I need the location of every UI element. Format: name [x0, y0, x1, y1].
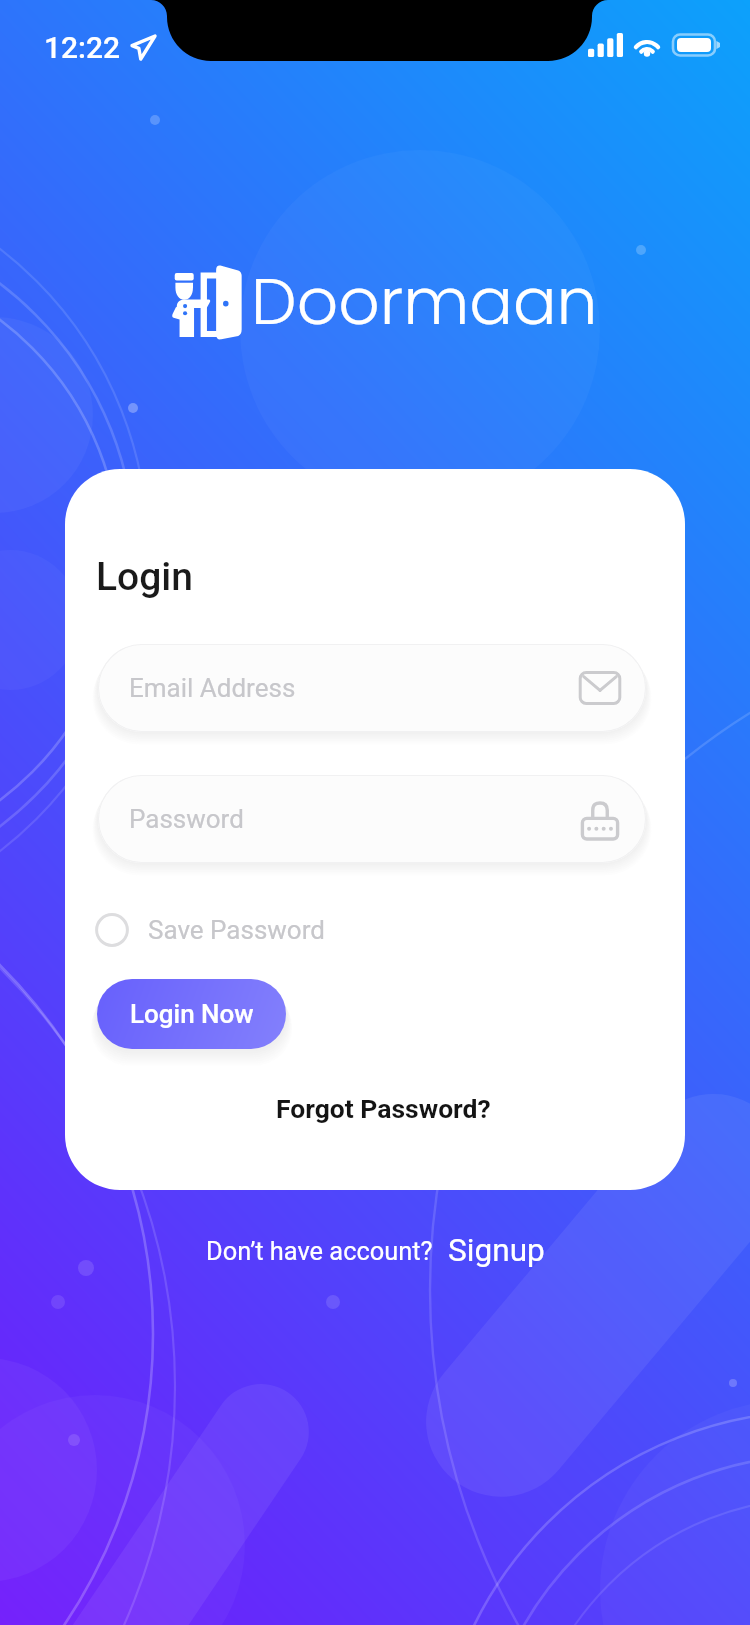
button[interactable]: Password: [98, 775, 646, 863]
button[interactable]: Email Address: [98, 644, 646, 732]
staticText: Login Now: [130, 999, 254, 1029]
staticText: Login: [96, 554, 193, 600]
staticText: Save Password: [148, 915, 325, 945]
staticText: Doormaan: [251, 256, 598, 347]
staticText: Signup: [448, 1232, 545, 1269]
button[interactable]: Signup: [448, 1232, 545, 1269]
button[interactable]: Login Now: [97, 979, 286, 1049]
staticText: Forgot Password?: [276, 1093, 491, 1124]
button[interactable]: Save Password: [95, 907, 325, 953]
staticText: Password: [129, 804, 244, 834]
staticText: Email Address: [129, 673, 296, 703]
button[interactable]: Forgot Password?: [223, 1082, 543, 1134]
staticText: 12:22: [44, 30, 121, 65]
staticText: Don’t have account?: [206, 1236, 433, 1266]
